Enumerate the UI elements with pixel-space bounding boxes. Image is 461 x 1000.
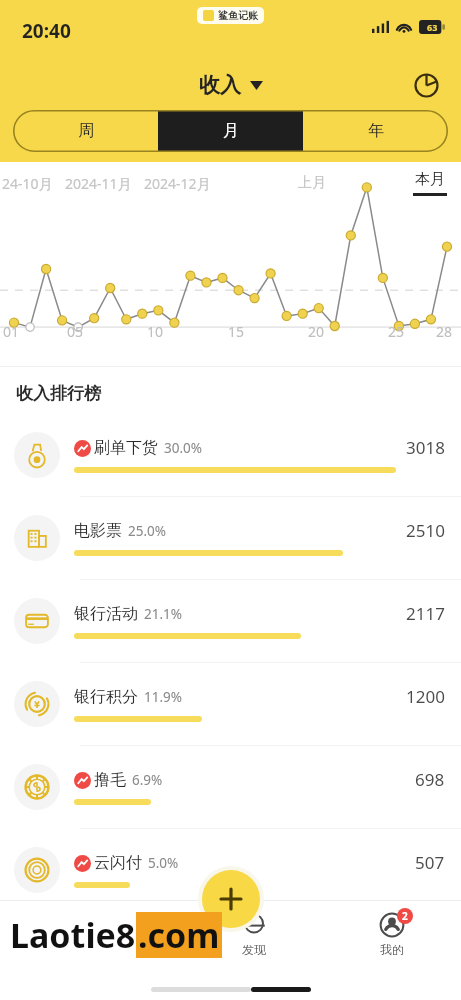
button[interactable]: 图表 [409, 68, 443, 102]
staticText: 收入 [199, 72, 241, 98]
staticText: 年 [368, 121, 384, 141]
button[interactable]: 本月 [413, 170, 447, 196]
staticText: 撸毛 [94, 770, 126, 790]
staticText: 24-10月 [2, 174, 53, 193]
staticText: 月 [223, 121, 239, 141]
staticText: 63 [427, 21, 438, 33]
staticText: 15 [228, 322, 245, 341]
staticText: 25 [388, 322, 405, 341]
staticText: 银行活动 [74, 604, 138, 624]
staticText: 上月 [298, 174, 326, 192]
staticText: 发现 [242, 942, 266, 957]
button[interactable]: 记一笔 [202, 870, 260, 928]
staticText: 2510 [406, 519, 445, 542]
button[interactable]: 2 [323, 906, 461, 961]
staticText: 25.0% [128, 522, 167, 540]
staticText: 698 [415, 768, 445, 791]
staticText: 电影票 [74, 521, 122, 541]
staticText: 周 [78, 121, 94, 141]
staticText: 2024-12月 [144, 174, 211, 193]
staticText: Laotie8 [10, 912, 136, 958]
button[interactable]: 年 [303, 110, 448, 152]
staticText: 01 [3, 322, 20, 341]
staticText: 本月 [415, 170, 445, 189]
button[interactable]: 2024-11月 [65, 174, 132, 193]
button[interactable]: 刷单下货 [0, 414, 461, 496]
staticText: 05 [67, 322, 84, 341]
button[interactable]: 周 [13, 110, 158, 152]
button[interactable]: 电影票 [0, 497, 461, 579]
staticText: 507 [415, 851, 445, 874]
button[interactable]: 24-10月 [2, 174, 53, 193]
staticText: 2024-11月 [65, 174, 132, 193]
staticText: 1200 [406, 685, 445, 708]
button[interactable]: 收入 [199, 72, 263, 98]
staticText: 6.9% [132, 771, 163, 789]
staticText: 30.0% [164, 439, 203, 457]
button[interactable]: 撸毛 [0, 746, 461, 828]
staticText: 21.1% [144, 605, 183, 623]
staticText: 刷单下货 [94, 438, 158, 458]
staticText: 银行积分 [74, 687, 138, 707]
button[interactable]: 2024-12月 [144, 174, 211, 193]
staticText: 28 [436, 322, 453, 341]
button[interactable]: 上月 [298, 174, 326, 192]
staticText: 云闪付 [94, 853, 142, 873]
staticText: 鲨鱼记账 [218, 9, 258, 22]
staticText: 11.9% [144, 688, 183, 706]
button[interactable]: 银行积分 [0, 663, 461, 745]
button[interactable]: 月 [158, 110, 303, 152]
button[interactable]: 云闪付 [0, 829, 461, 911]
staticText: 20 [308, 322, 325, 341]
staticText: .com [138, 912, 220, 958]
button[interactable]: 银行活动 [0, 580, 461, 662]
staticText: 2 [402, 909, 408, 923]
button[interactable]: 发现 [185, 906, 323, 961]
staticText: 5.0% [148, 854, 179, 872]
staticText: 10 [147, 322, 164, 341]
staticText: 2117 [406, 602, 445, 625]
staticText: 我的 [380, 942, 404, 957]
staticText: 收入排行榜 [16, 383, 101, 404]
staticText: 20:40 [22, 18, 71, 44]
staticText: 3018 [406, 436, 445, 459]
